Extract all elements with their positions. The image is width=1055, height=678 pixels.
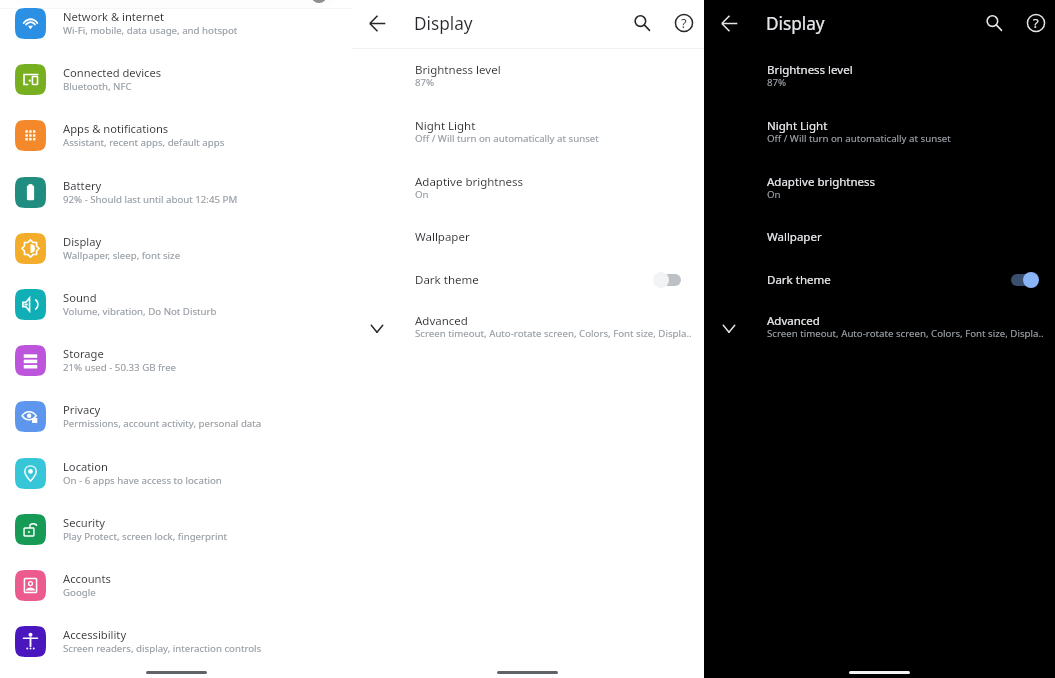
staticText: Location [63,459,108,474]
staticText: Off / Will turn on automatically at suns… [767,132,1047,145]
staticText: 92% - Should last until about 12:45 PM [63,193,238,206]
button[interactable]: Dark theme [352,270,704,311]
button[interactable]: Apps & notifications [0,108,352,163]
button[interactable]: Network & internet [0,0,352,51]
button[interactable]: Security [0,502,352,557]
button[interactable]: Wallpaper [352,227,704,270]
button[interactable]: Display [0,221,352,276]
staticText: Night Light [415,118,476,134]
button[interactable]: Accessibility [0,614,352,669]
button[interactable]: Connected devices [0,52,352,107]
staticText: Storage [63,346,104,361]
staticText: Display [414,12,473,35]
button[interactable]: Privacy [0,389,352,444]
staticText: Dark theme [767,272,831,288]
button[interactable]: Advanced [704,311,1055,367]
staticText: Volume, vibration, Do Not Disturb [63,305,217,318]
staticText: Screen readers, display, interaction con… [63,642,262,655]
button[interactable]: Advanced [352,311,704,367]
button[interactable]: Brightness level [352,60,704,116]
button[interactable]: Back [360,6,394,40]
staticText: Adaptive brightness [767,174,876,190]
staticText: Wallpaper [415,229,470,245]
button[interactable]: Help [1019,6,1053,40]
staticText: Night Light [767,118,828,134]
staticText: 87% [767,76,1047,89]
button[interactable]: Night Light [704,116,1055,172]
button[interactable]: Location [0,446,352,501]
staticText: Wi-Fi, mobile, data usage, and hotspot [63,24,238,37]
button[interactable] [6,0,345,8]
staticText: 87% [415,76,695,89]
staticText: Battery [63,178,102,193]
button[interactable]: Account [311,0,327,3]
staticText: On [767,188,1047,201]
button[interactable]: Search [625,6,659,40]
staticText: Off / Will turn on automatically at suns… [415,132,695,145]
staticText: Accessibility [63,627,127,642]
button[interactable]: Back [712,6,746,40]
staticText: Brightness level [415,62,501,78]
staticText: Display [63,234,102,249]
button[interactable]: Adaptive brightness [704,172,1055,228]
staticText: Google [63,586,96,599]
staticText: Apps & notifications [63,121,169,136]
button[interactable]: Dark theme [704,270,1055,311]
staticText: Dark theme [415,272,479,288]
staticText: Security [63,515,105,530]
staticText: Connected devices [63,65,162,80]
staticText: Display [766,12,825,35]
button[interactable]: Night Light [352,116,704,172]
button[interactable]: Help [667,6,701,40]
staticText: Bluetooth, NFC [63,80,132,93]
button[interactable]: Storage [0,333,352,388]
staticText: Assistant, recent apps, default apps [63,136,225,149]
staticText: Network & internet [63,9,165,24]
staticText: On [415,188,695,201]
staticText: Wallpaper [767,229,822,245]
staticText: Permissions, account activity, personal … [63,417,262,430]
staticText: ? [1033,14,1039,32]
button[interactable]: Brightness level [704,60,1055,116]
staticText: Accounts [63,571,111,586]
button[interactable]: Dark theme toggle [1007,267,1043,293]
staticText: Adaptive brightness [415,174,524,190]
button[interactable]: Sound [0,277,352,332]
button[interactable]: Dark theme toggle [651,267,687,293]
staticText: Advanced [767,313,820,329]
staticText: Screen timeout, Auto-rotate screen, Colo… [767,327,1047,340]
staticText: 21% used - 50.33 GB free [63,361,177,374]
button[interactable]: Adaptive brightness [352,172,704,228]
staticText: Screen timeout, Auto-rotate screen, Colo… [415,327,695,340]
staticText: Advanced [415,313,468,329]
staticText: Sound [63,290,97,305]
button[interactable]: Accounts [0,558,352,613]
staticText: ? [681,14,687,32]
button[interactable]: Battery [0,165,352,220]
staticText: Privacy [63,402,101,417]
staticText: Brightness level [767,62,853,78]
staticText: Wallpaper, sleep, font size [63,249,181,262]
button[interactable]: Search [977,6,1011,40]
staticText: Play Protect, screen lock, fingerprint [63,530,228,543]
button[interactable]: Wallpaper [704,227,1055,270]
staticText: On - 6 apps have access to location [63,474,222,487]
